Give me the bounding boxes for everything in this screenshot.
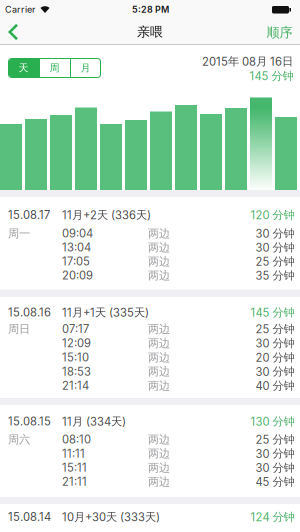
- staticText: 15.08.15: [8, 415, 51, 428]
- staticText: 21:11: [62, 475, 87, 489]
- staticText: 两边: [148, 336, 170, 350]
- staticText: 13:04: [62, 241, 91, 254]
- staticText: 两边: [148, 268, 170, 282]
- staticText: 18:53: [62, 365, 91, 378]
- staticText: 11月+1天 (335天): [62, 305, 149, 319]
- staticText: 145 分钟: [249, 69, 293, 83]
- staticText: 25 分钟: [255, 322, 294, 336]
- staticText: 两边: [148, 475, 170, 489]
- staticText: 07:17: [62, 322, 89, 336]
- staticText: 两边: [148, 446, 170, 461]
- staticText: 周一: [8, 226, 30, 240]
- staticText: 10月+30天 (333天): [62, 510, 160, 524]
- staticText: 两边: [148, 432, 170, 446]
- staticText: 30 分钟: [255, 336, 294, 350]
- staticText: 两边: [148, 364, 170, 379]
- staticText: 145 分钟: [250, 305, 294, 319]
- staticText: 30 分钟: [255, 226, 294, 240]
- staticText: 30 分钟: [255, 461, 294, 475]
- staticText: 15.08.16: [8, 306, 51, 319]
- staticText: 11月+2天 (336天): [62, 208, 151, 222]
- staticText: 09:04: [62, 227, 93, 240]
- staticText: 15:10: [62, 351, 89, 364]
- staticText: 35 分钟: [255, 268, 294, 282]
- staticText: 11月 (334天): [62, 414, 126, 428]
- staticText: 顺序: [266, 24, 292, 41]
- staticText: 15.08.17: [8, 208, 50, 222]
- staticText: 40 分钟: [255, 379, 294, 393]
- staticText: 20:09: [62, 269, 93, 282]
- staticText: 25 分钟: [255, 432, 294, 446]
- staticText: 21:14: [62, 379, 89, 393]
- staticText: 15.08.14: [8, 510, 51, 524]
- staticText: 17:05: [62, 255, 90, 268]
- staticText: Carrier: [5, 4, 35, 15]
- staticText: 两边: [148, 226, 170, 240]
- staticText: 12:09: [62, 336, 91, 350]
- staticText: 天: [18, 62, 28, 74]
- staticText: 124 分钟: [250, 510, 294, 524]
- staticText: 30 分钟: [255, 446, 294, 461]
- staticText: 15:11: [62, 461, 87, 474]
- staticText: 11:11: [62, 447, 85, 460]
- staticText: 两边: [148, 379, 170, 393]
- staticText: 20 分钟: [255, 350, 294, 364]
- staticText: 月: [80, 62, 90, 74]
- staticText: 25 分钟: [255, 254, 294, 268]
- staticText: 亲喂: [137, 24, 163, 40]
- staticText: 两边: [148, 461, 170, 475]
- staticText: 08:10: [62, 433, 91, 446]
- staticText: 两边: [148, 350, 170, 364]
- staticText: 两边: [148, 240, 170, 254]
- staticText: 30 分钟: [255, 364, 294, 379]
- staticText: 两边: [148, 254, 170, 268]
- staticText: 两边: [148, 322, 170, 336]
- staticText: 45 分钟: [255, 475, 294, 489]
- staticText: 周日: [8, 322, 30, 336]
- staticText: 120 分钟: [250, 208, 294, 222]
- staticText: 周: [49, 62, 59, 74]
- staticText: 周六: [8, 432, 30, 446]
- staticText: 30 分钟: [255, 240, 294, 254]
- staticText: 2015年 08月 16日: [202, 54, 293, 69]
- staticText: 5:28 PM: [132, 4, 169, 15]
- staticText: 130 分钟: [250, 414, 294, 428]
